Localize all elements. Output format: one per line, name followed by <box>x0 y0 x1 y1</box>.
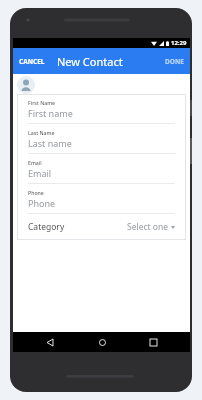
staticText: Email <box>28 167 52 179</box>
staticText: First Name <box>28 99 56 106</box>
button[interactable]: CANCEL <box>13 51 51 72</box>
button[interactable]: Email <box>17 154 186 183</box>
staticText: Email <box>28 159 42 166</box>
staticText: First name <box>28 107 73 119</box>
button[interactable]: First Name <box>17 94 186 123</box>
button[interactable]: Category <box>17 214 186 240</box>
staticText: Select one <box>127 221 168 233</box>
staticText: Phone <box>28 189 44 196</box>
staticText: DONE <box>165 57 184 66</box>
staticText: CANCEL <box>19 57 45 66</box>
staticText: Last Name <box>28 129 55 136</box>
staticText: New Contact <box>57 54 123 69</box>
button[interactable]: Home <box>87 332 117 352</box>
button[interactable]: DONE <box>159 51 190 72</box>
button[interactable]: Last Name <box>17 124 186 153</box>
button[interactable]: Add photo <box>17 76 35 94</box>
staticText: Category <box>28 221 65 233</box>
staticText: Phone <box>28 197 56 209</box>
staticText: Last name <box>28 137 72 149</box>
staticText: 12:29 <box>171 39 187 47</box>
button[interactable]: Recents <box>138 332 168 352</box>
button[interactable]: Back <box>35 332 65 352</box>
button[interactable]: Phone <box>17 184 186 213</box>
